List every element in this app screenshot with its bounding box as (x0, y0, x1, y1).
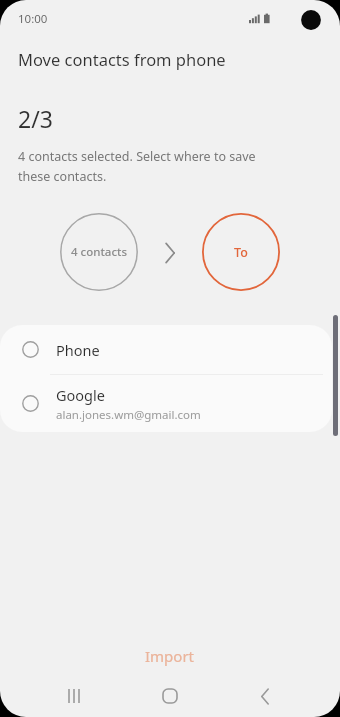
staticText: 4 contacts selected. Select where to sav… (18, 148, 256, 165)
staticText: Move contacts from phone (18, 48, 226, 70)
button[interactable]: Recents (55, 676, 95, 716)
staticText: 2/3 (18, 103, 53, 134)
staticText: Import (145, 646, 195, 666)
button[interactable]: To (202, 213, 280, 291)
staticText: To (234, 244, 248, 261)
staticText: Phone (56, 340, 100, 360)
staticText: 10:00 (18, 11, 48, 27)
staticText: Google (56, 385, 105, 405)
button[interactable]: Back (245, 676, 285, 716)
button[interactable]: 4 contacts (60, 213, 138, 291)
button[interactable]: Home (148, 675, 192, 717)
button[interactable]: Google (0, 375, 332, 432)
staticText: 4 contacts (71, 244, 128, 260)
staticText: these contacts. (18, 168, 107, 185)
button[interactable]: Phone (0, 325, 332, 374)
button[interactable]: Import (100, 640, 240, 672)
staticText: alan.jones.wm@gmail.com (56, 407, 201, 423)
